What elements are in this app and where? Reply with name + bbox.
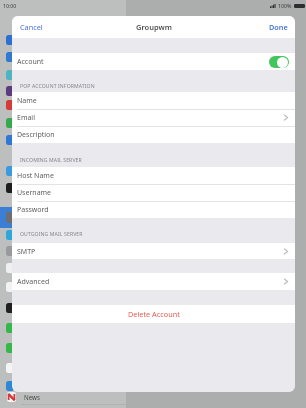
button[interactable]: Name bbox=[12, 92, 295, 109]
button[interactable]: SMTP bbox=[12, 243, 295, 260]
button[interactable]: Password bbox=[12, 201, 295, 218]
staticText: INCOMING MAIL SERVER bbox=[20, 157, 82, 164]
button[interactable]: Cancel bbox=[12, 22, 43, 32]
staticText: SMTP bbox=[17, 247, 36, 257]
staticText: OUTGOING MAIL SERVER bbox=[20, 231, 83, 238]
button[interactable]: Account enabled bbox=[269, 56, 289, 68]
staticText: Password bbox=[17, 205, 49, 215]
button[interactable]: Host Name bbox=[12, 167, 295, 184]
staticText: 10:00 bbox=[3, 2, 17, 9]
staticText: Delete Account bbox=[128, 309, 180, 319]
button[interactable]: Delete Account bbox=[12, 305, 295, 323]
button[interactable]: Description bbox=[12, 126, 295, 143]
staticText: Email bbox=[17, 113, 35, 123]
staticText: Username bbox=[17, 188, 52, 198]
staticText: Host Name bbox=[17, 171, 54, 181]
staticText: Groupwm bbox=[136, 22, 172, 32]
button[interactable]: Advanced bbox=[12, 273, 295, 290]
staticText: Description bbox=[17, 130, 55, 140]
staticText: 100% bbox=[278, 2, 292, 9]
staticText: Name bbox=[17, 96, 37, 106]
staticText: Advanced bbox=[17, 277, 50, 287]
staticText: Account bbox=[17, 57, 44, 67]
button[interactable]: Email bbox=[12, 109, 295, 126]
button[interactable]: Account bbox=[12, 53, 295, 70]
staticText: POP ACCOUNT INFORMATION bbox=[20, 83, 95, 90]
staticText: News bbox=[24, 393, 40, 401]
button[interactable]: Username bbox=[12, 184, 295, 201]
button[interactable]: Done bbox=[269, 22, 295, 32]
